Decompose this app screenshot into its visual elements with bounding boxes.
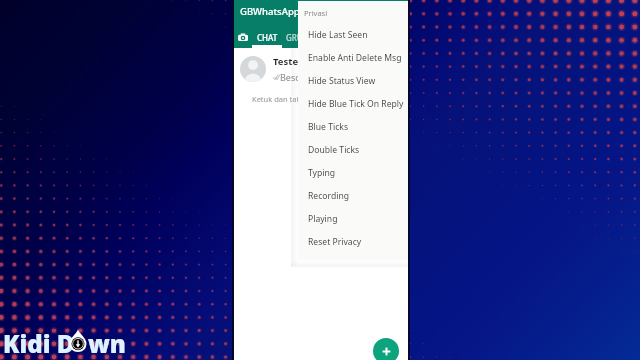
button[interactable]: Typing xyxy=(298,161,408,184)
button[interactable]: Blue Ticks xyxy=(298,115,408,138)
staticText: Typing xyxy=(308,167,336,179)
staticText: Enable Anti Delete Msg xyxy=(308,52,402,64)
staticText: wn xyxy=(88,327,126,360)
staticText: Kidi D xyxy=(3,327,75,360)
staticText: Hide Blue Tick On Reply xyxy=(308,98,404,110)
button[interactable]: GRUP xyxy=(282,29,312,46)
staticText: GRUP xyxy=(286,32,308,43)
button[interactable]: Hide Status View xyxy=(298,69,408,92)
staticText: Reset Privacy xyxy=(308,236,362,248)
staticText: Playing xyxy=(308,213,338,225)
staticText: Blue Ticks xyxy=(308,121,349,133)
button[interactable]: Enable Anti Delete Msg xyxy=(298,46,408,69)
button[interactable]: CHAT xyxy=(252,29,282,46)
staticText: Ketuk dan tahan xyxy=(252,94,310,104)
button[interactable]: Testemu xyxy=(233,50,408,88)
staticText: CHAT xyxy=(257,32,278,43)
button[interactable]: New chat xyxy=(373,338,399,360)
button[interactable]: Hide Last Seen xyxy=(298,23,408,46)
staticText: Hide Status View xyxy=(308,75,376,87)
button[interactable]: Recording xyxy=(298,184,408,207)
staticText: Recording xyxy=(308,190,349,202)
button[interactable]: Camera xyxy=(231,29,255,46)
staticText: Besok ya xyxy=(280,71,318,83)
staticText: GBWhatsApp xyxy=(240,5,300,18)
staticText: Hide Last Seen xyxy=(308,29,368,41)
button[interactable]: Reset Privacy xyxy=(298,230,408,253)
staticText: Double Ticks xyxy=(308,144,360,156)
button[interactable]: Double Ticks xyxy=(298,138,408,161)
staticText: Privasi xyxy=(304,8,328,18)
button[interactable]: Playing xyxy=(298,207,408,230)
staticText: Testemu xyxy=(273,55,314,68)
button[interactable]: Hide Blue Tick On Reply xyxy=(298,92,408,115)
